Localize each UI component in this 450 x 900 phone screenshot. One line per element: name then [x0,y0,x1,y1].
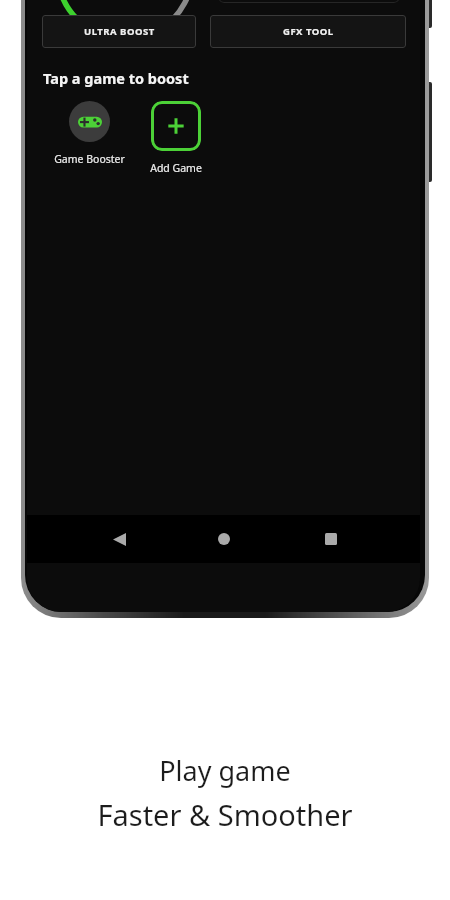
button[interactable]: Game Booster [44,101,135,166]
staticText: Add Game [150,161,202,175]
button[interactable]: Add Game [140,101,212,175]
button[interactable]: ULTRA BOOST [42,15,196,48]
staticText: GFX TOOL [283,25,334,38]
button[interactable]: Back [83,515,155,563]
button[interactable]: Recent apps [295,515,367,563]
staticText: Play game [159,752,291,789]
staticText: Tap a game to boost [43,68,189,88]
staticText: Game Booster [54,152,125,166]
staticText: ULTRA BOOST [84,25,155,38]
button[interactable]: GFX TOOL [210,15,406,48]
staticText: Faster & Smoother [97,795,353,834]
button[interactable]: Home [188,515,260,563]
